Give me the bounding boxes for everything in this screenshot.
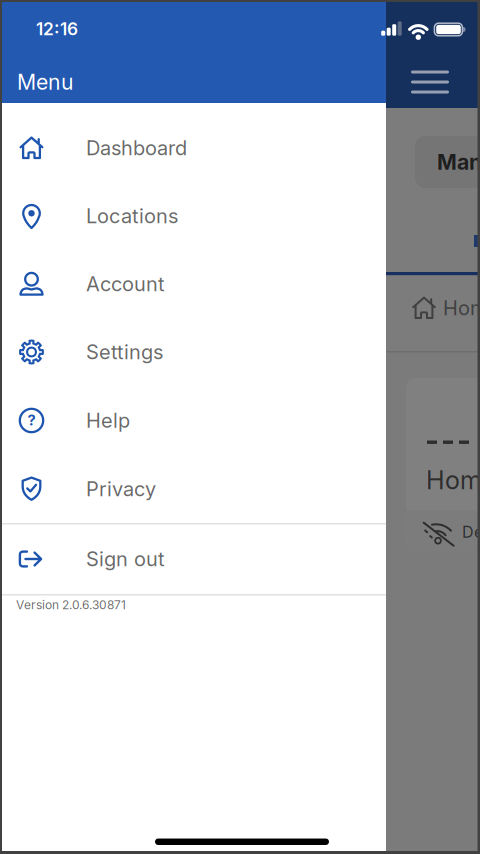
button[interactable]: Home	[394, 278, 480, 338]
staticText: Home	[443, 296, 480, 320]
button[interactable]: Manage	[415, 136, 480, 188]
staticText: 12:16	[36, 19, 78, 39]
button[interactable]: Dashboard	[0, 114, 386, 182]
staticText: Help	[86, 409, 130, 432]
button[interactable]: Settings	[0, 318, 386, 386]
button[interactable]: ?	[0, 386, 386, 454]
staticText: Dashboard	[86, 136, 187, 160]
button[interactable]: Account	[0, 250, 386, 318]
staticText: Privacy	[86, 477, 156, 501]
staticText: Manage	[437, 149, 480, 175]
button[interactable]: Locations	[0, 182, 386, 250]
staticText: ?	[27, 411, 35, 429]
button[interactable]: Privacy	[0, 455, 386, 523]
staticText: Sign out	[86, 547, 165, 571]
staticText: Home	[426, 465, 480, 495]
staticText: Account	[86, 272, 165, 296]
button[interactable]: Sign out	[0, 525, 386, 593]
staticText: Device offline	[462, 523, 480, 541]
button[interactable]: Menu	[400, 56, 460, 106]
staticText: Locations	[86, 204, 178, 228]
staticText: Settings	[86, 340, 163, 364]
staticText: Version 2.0.6.30871	[16, 598, 126, 612]
staticText: Menu	[17, 69, 74, 95]
